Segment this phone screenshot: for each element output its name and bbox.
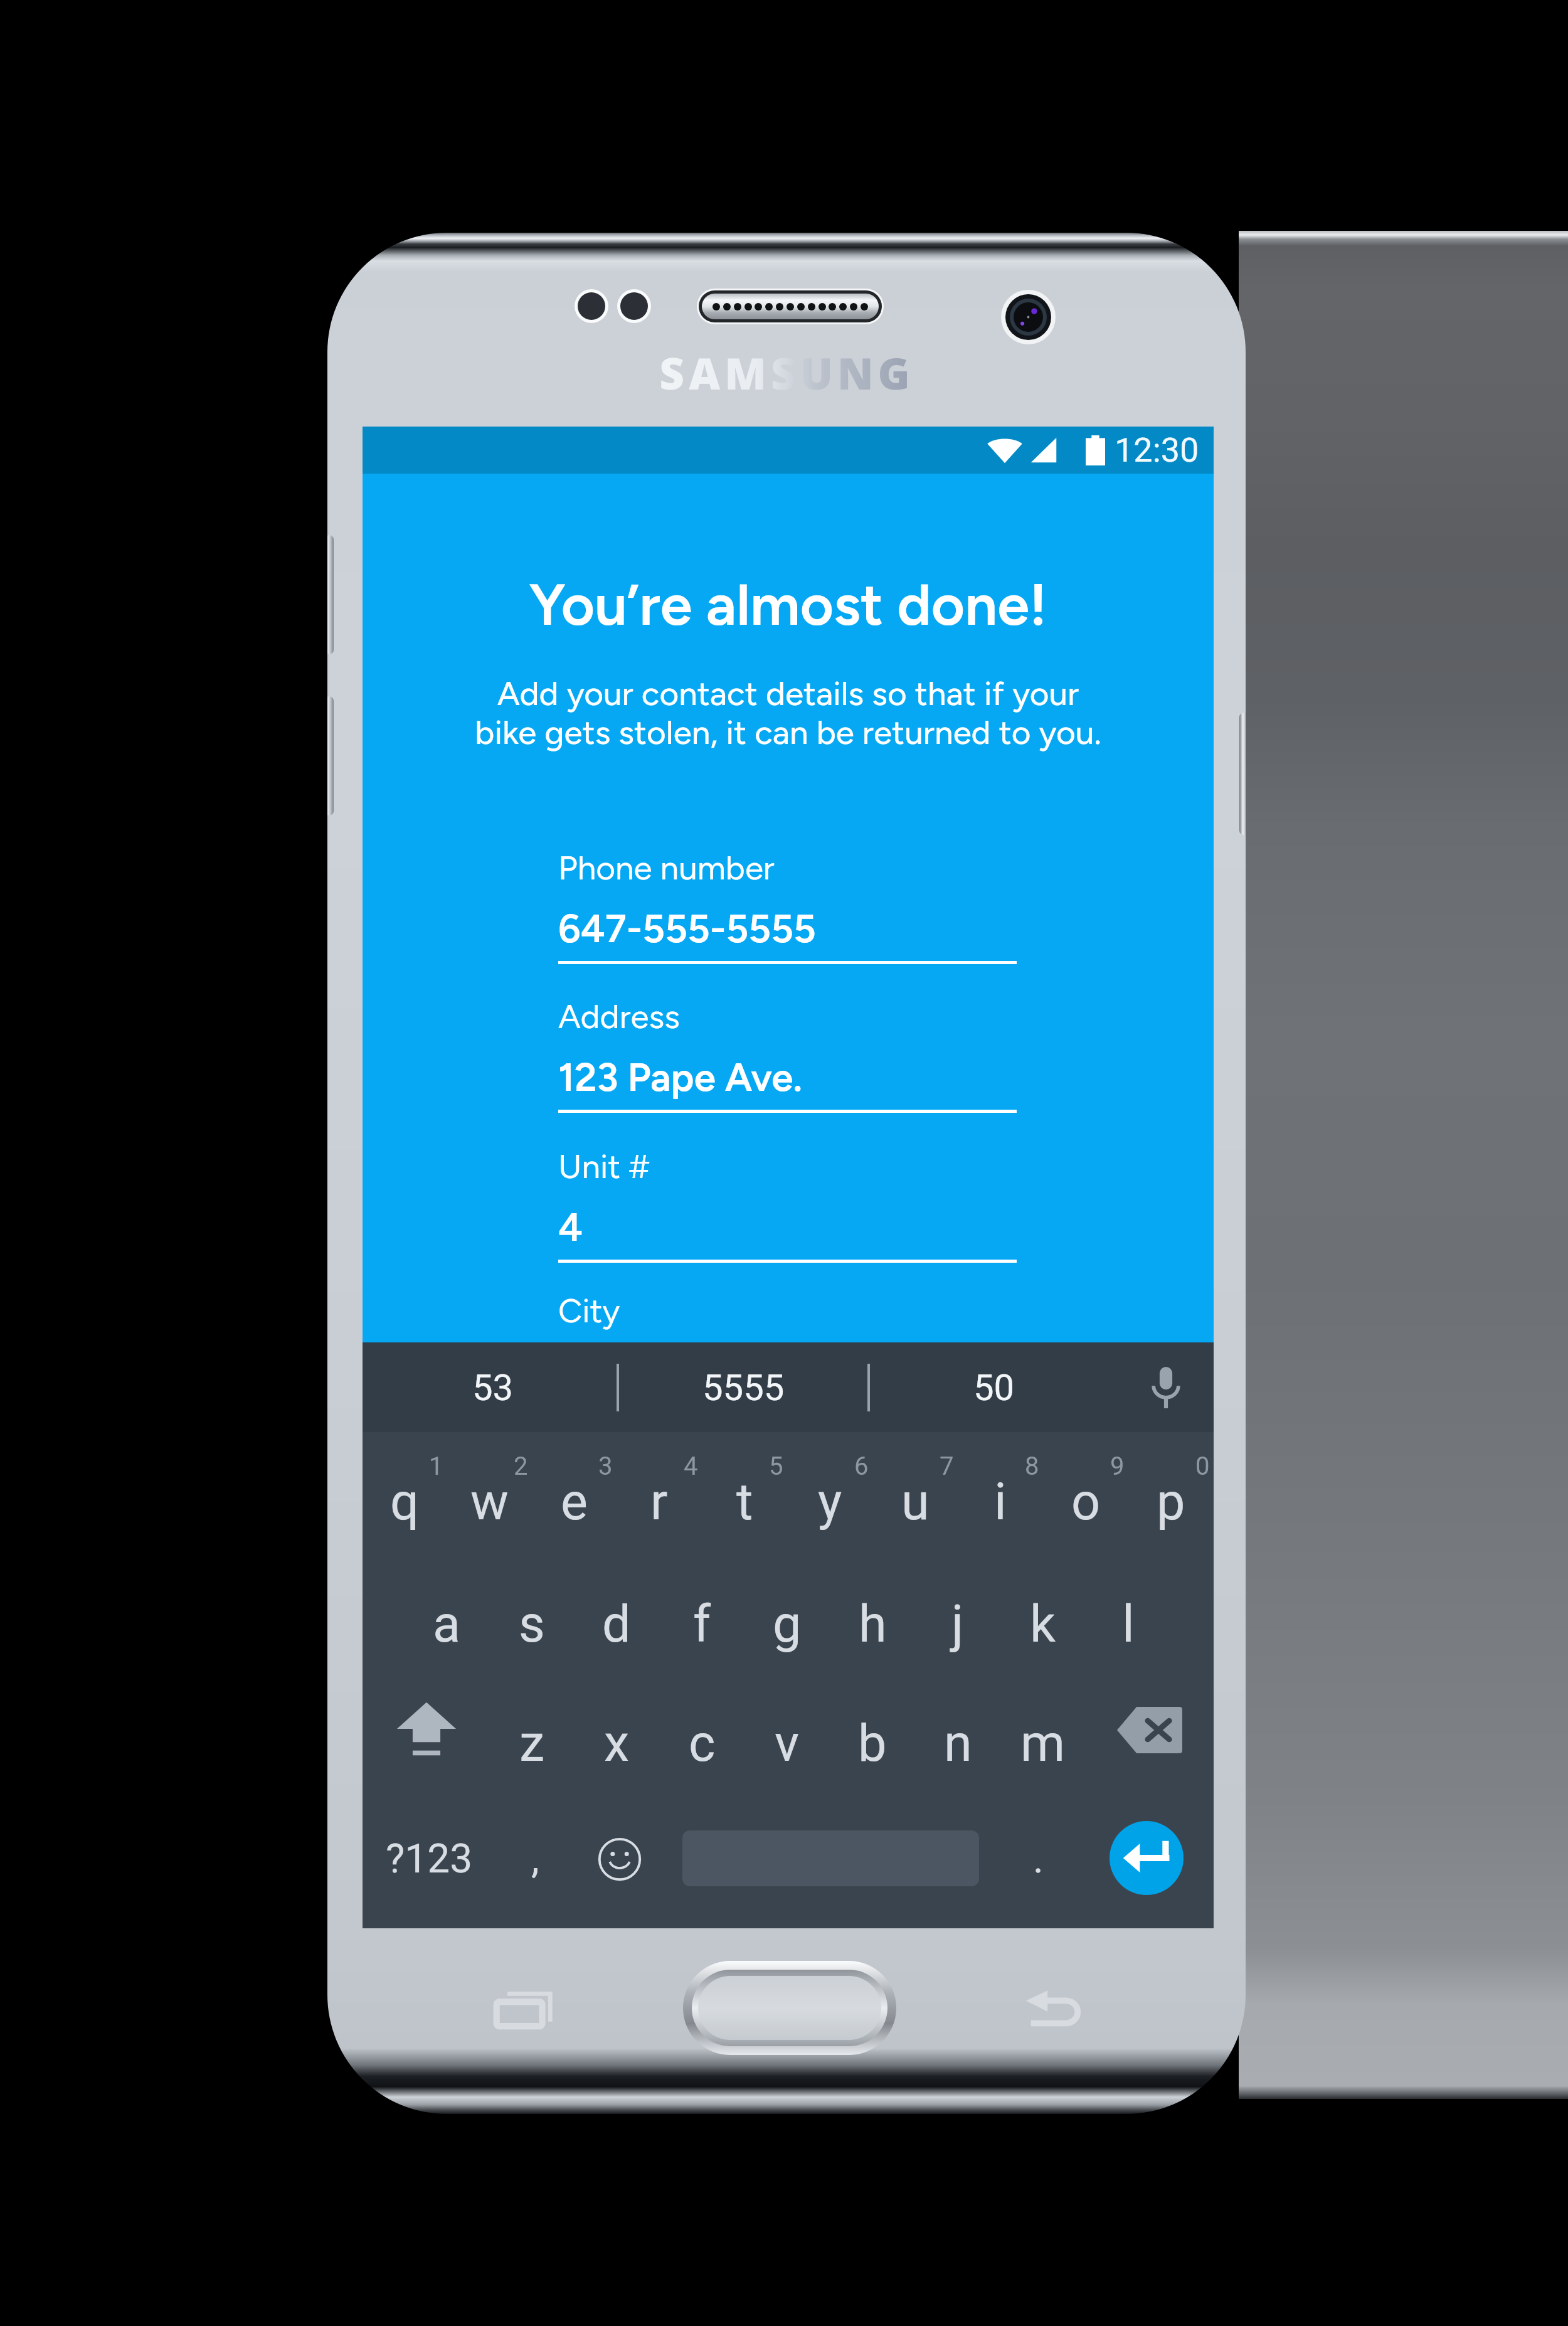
staticText: 53 xyxy=(472,1366,514,1409)
staticText: w xyxy=(470,1472,509,1532)
staticText: e xyxy=(561,1472,588,1532)
button[interactable]: Unit # xyxy=(558,1147,1017,1266)
staticText: Unit # xyxy=(558,1147,650,1187)
staticText: 0 xyxy=(1195,1452,1210,1481)
staticText: h xyxy=(859,1595,887,1654)
staticText: l xyxy=(1122,1595,1135,1654)
staticText: Phone number xyxy=(558,848,775,888)
button[interactable]: 6 xyxy=(787,1432,872,1551)
button[interactable]: 8 xyxy=(958,1432,1043,1551)
button[interactable]: 1 xyxy=(363,1432,447,1551)
button[interactable]: x xyxy=(575,1670,659,1790)
staticText: 9 xyxy=(1110,1452,1125,1481)
staticText: p xyxy=(1157,1472,1185,1532)
button[interactable]: 3 xyxy=(532,1432,617,1551)
button[interactable]: 50 xyxy=(870,1342,1118,1432)
staticText: Address xyxy=(558,997,680,1037)
button[interactable]: 9 xyxy=(1043,1432,1128,1551)
staticText: 3 xyxy=(598,1452,613,1481)
button[interactable]: k xyxy=(1000,1551,1086,1670)
button[interactable]: s xyxy=(489,1551,574,1670)
button[interactable]: j xyxy=(915,1551,1000,1670)
staticText: t xyxy=(736,1472,753,1532)
staticText: 8 xyxy=(1025,1452,1039,1481)
staticText: 2 xyxy=(514,1452,528,1481)
button[interactable]: 53 xyxy=(369,1342,617,1432)
button[interactable]: c xyxy=(659,1670,744,1790)
staticText: s xyxy=(519,1595,545,1654)
staticText: You’re almost done! xyxy=(363,570,1214,639)
staticText: , xyxy=(531,1835,539,1883)
button[interactable]: m xyxy=(1000,1670,1086,1790)
staticText: y xyxy=(818,1472,842,1532)
staticText: 1 xyxy=(429,1452,443,1481)
staticText: g xyxy=(773,1595,802,1654)
staticText: j xyxy=(951,1595,964,1654)
button[interactable]: v xyxy=(744,1670,830,1790)
button[interactable]: g xyxy=(744,1551,830,1670)
staticText: 7 xyxy=(940,1452,954,1481)
button[interactable]: a xyxy=(405,1551,489,1670)
button[interactable]: Backspace xyxy=(1086,1670,1214,1790)
staticText: 6 xyxy=(854,1452,869,1481)
button[interactable]: f xyxy=(659,1551,744,1670)
button[interactable]: Emoji xyxy=(577,1790,662,1928)
button[interactable]: l xyxy=(1086,1551,1171,1670)
staticText: u xyxy=(901,1472,930,1532)
button[interactable]: z xyxy=(490,1670,575,1790)
staticText: f xyxy=(693,1595,711,1654)
staticText: d xyxy=(602,1595,631,1654)
staticText: ?123 xyxy=(386,1835,473,1883)
button[interactable]: , xyxy=(493,1790,578,1928)
staticText: k xyxy=(1030,1595,1056,1654)
staticText: 5555 xyxy=(702,1366,785,1409)
staticText: 647-555-5555 xyxy=(558,905,816,952)
staticText: 4 xyxy=(558,1204,583,1250)
button[interactable]: . xyxy=(996,1790,1081,1928)
button[interactable]: City xyxy=(558,1288,1017,1342)
staticText: . xyxy=(1033,1835,1044,1883)
staticText: b xyxy=(858,1714,887,1773)
button[interactable]: 7 xyxy=(872,1432,958,1551)
button[interactable]: Home xyxy=(683,1961,896,2055)
button[interactable]: 0 xyxy=(1128,1432,1214,1551)
staticText: n xyxy=(944,1714,972,1773)
button[interactable]: 5555 xyxy=(619,1342,867,1432)
button[interactable]: Voice input xyxy=(1118,1342,1214,1432)
button[interactable]: d xyxy=(574,1551,659,1670)
staticText: 5 xyxy=(769,1452,783,1481)
staticText: 123 Pape Ave. xyxy=(558,1054,803,1100)
button[interactable]: 2 xyxy=(447,1432,532,1551)
button[interactable]: Back xyxy=(1025,1990,1081,2026)
staticText: r xyxy=(650,1472,668,1532)
button[interactable]: ?123 xyxy=(379,1790,479,1928)
staticText: o xyxy=(1071,1472,1101,1532)
button[interactable]: Shift xyxy=(363,1670,490,1790)
staticText: a xyxy=(433,1595,461,1654)
button[interactable]: n xyxy=(915,1670,1000,1790)
staticText: m xyxy=(1020,1714,1066,1773)
button[interactable]: Enter xyxy=(1110,1821,1184,1895)
staticText: 50 xyxy=(973,1366,1015,1409)
button[interactable]: Address xyxy=(558,997,1017,1116)
staticText: City xyxy=(558,1291,620,1331)
staticText: Add your contact details so that if your… xyxy=(363,674,1214,752)
button[interactable]: h xyxy=(830,1551,915,1670)
staticText: 12:30 xyxy=(1115,430,1199,470)
staticText: x xyxy=(604,1714,630,1773)
button[interactable]: Recent apps xyxy=(495,1989,552,2027)
staticText: SAMSUNG xyxy=(597,343,977,402)
button[interactable]: 4 xyxy=(617,1432,702,1551)
button[interactable]: b xyxy=(830,1670,915,1790)
staticText: z xyxy=(519,1714,545,1773)
staticText: c xyxy=(689,1714,716,1773)
staticText: q xyxy=(390,1472,420,1532)
button[interactable]: 5 xyxy=(702,1432,787,1551)
button[interactable]: Phone number xyxy=(558,848,1017,967)
staticText: 4 xyxy=(684,1452,698,1481)
staticText: i xyxy=(994,1472,1007,1532)
staticText: v xyxy=(775,1714,800,1773)
